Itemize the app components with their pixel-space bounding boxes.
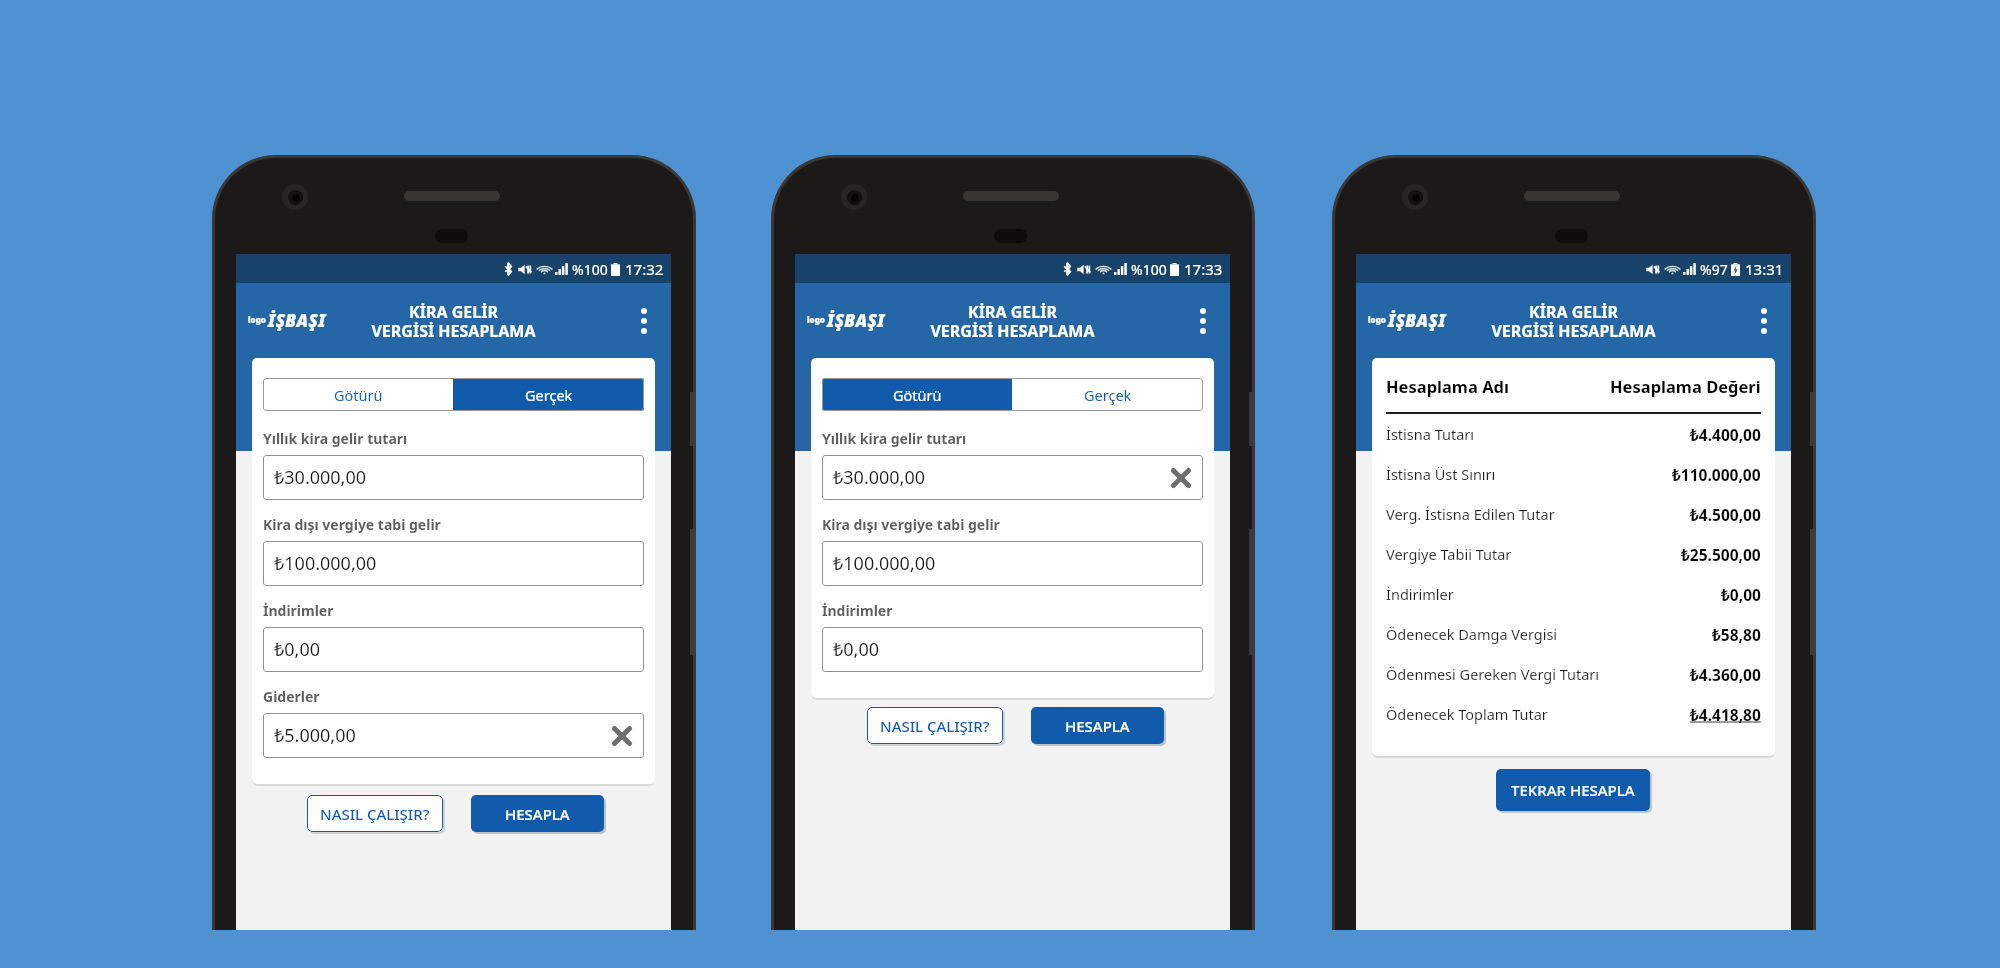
staticText: ₺4.360,00	[1690, 664, 1761, 685]
staticText: Gerçek	[525, 385, 573, 405]
staticText: HESAPLA	[505, 804, 570, 824]
staticText: ₺100.000,00	[274, 551, 377, 576]
staticText: ₺110.000,00	[1672, 464, 1761, 485]
staticText: Hesaplama Adı	[1386, 375, 1509, 397]
staticText: ₺0,00	[274, 637, 321, 662]
staticText: ₺4.500,00	[1690, 504, 1761, 525]
staticText: İndirimler	[1386, 584, 1454, 604]
staticText: 17:32	[625, 259, 664, 279]
staticText: KİRA GELİR VERGİSİ HESAPLAMA	[930, 301, 1095, 342]
button[interactable]: Gerçek	[1012, 378, 1203, 411]
staticText: Ödenecek Damga Vergisi	[1386, 624, 1558, 644]
staticText: %97	[1700, 260, 1728, 279]
button[interactable]: HESAPLA	[1031, 707, 1164, 744]
staticText: Giderler	[263, 687, 320, 706]
staticText: ₺30.000,00	[274, 465, 367, 490]
button[interactable]: Götürü	[263, 378, 453, 411]
staticText: 13:31	[1745, 259, 1784, 279]
staticText: ₺30.000,00	[833, 465, 926, 490]
staticText: Götürü	[893, 385, 942, 405]
staticText: ₺0,00	[1721, 584, 1761, 605]
staticText: KİRA GELİR VERGİSİ HESAPLAMA	[371, 301, 536, 342]
staticText: %100	[572, 260, 608, 279]
staticText: Ödenecek Toplam Tutar	[1386, 704, 1548, 724]
staticText: ₺25.500,00	[1681, 544, 1761, 565]
staticText: NASIL ÇALIŞIR?	[880, 716, 990, 736]
staticText: HESAPLA	[1065, 716, 1130, 736]
staticText: ₺5.000,00	[274, 723, 356, 748]
staticText: Kira dışı vergiye tabi gelir	[822, 515, 1000, 534]
staticText: ₺4.418,80	[1690, 704, 1761, 725]
staticText: Verg. İstisna Edilen Tutar	[1386, 504, 1555, 524]
staticText: İŞBAŞI	[268, 309, 326, 332]
staticText: İndirimler	[822, 601, 893, 620]
staticText: İndirimler	[263, 601, 334, 620]
staticText: Gerçek	[1084, 385, 1132, 405]
staticText: ₺58,80	[1712, 624, 1761, 645]
staticText: ₺100.000,00	[833, 551, 936, 576]
button[interactable]: More options	[1184, 302, 1222, 340]
staticText: İŞBAŞI	[1388, 309, 1446, 332]
staticText: İstisna Tutarı	[1386, 424, 1475, 444]
staticText: ₺4.400,00	[1690, 424, 1761, 445]
staticText: logo	[807, 314, 825, 325]
button[interactable]: Götürü	[822, 378, 1012, 411]
staticText: KİRA GELİR VERGİSİ HESAPLAMA	[1491, 301, 1656, 342]
staticText: Vergiye Tabii Tutar	[1386, 544, 1512, 564]
staticText: Kira dışı vergiye tabi gelir	[263, 515, 441, 534]
staticText: %100	[1131, 260, 1167, 279]
staticText: İstisna Üst Sınırı	[1386, 464, 1496, 484]
button[interactable]: Gerçek	[453, 378, 644, 411]
button[interactable]: NASIL ÇALIŞIR?	[867, 707, 1003, 744]
staticText: NASIL ÇALIŞIR?	[320, 804, 430, 824]
staticText: Hesaplama Değeri	[1610, 375, 1761, 397]
staticText: TEKRAR HESAPLA	[1511, 780, 1635, 800]
button[interactable]: Clear	[1171, 468, 1191, 488]
button[interactable]: More options	[625, 302, 663, 340]
staticText: 17:33	[1184, 259, 1223, 279]
button[interactable]: HESAPLA	[471, 795, 604, 832]
button[interactable]: More options	[1745, 302, 1783, 340]
button[interactable]: Clear	[612, 726, 632, 746]
staticText: ₺0,00	[833, 637, 880, 662]
button[interactable]: NASIL ÇALIŞIR?	[307, 795, 443, 832]
staticText: İŞBAŞI	[827, 309, 885, 332]
staticText: logo	[1368, 314, 1386, 325]
staticText: Yıllık kira gelir tutarı	[263, 429, 408, 448]
staticText: Ödenmesi Gereken Vergi Tutarı	[1386, 664, 1600, 684]
staticText: logo	[248, 314, 266, 325]
button[interactable]: TEKRAR HESAPLA	[1496, 769, 1650, 811]
staticText: Yıllık kira gelir tutarı	[822, 429, 967, 448]
staticText: Götürü	[334, 385, 383, 405]
